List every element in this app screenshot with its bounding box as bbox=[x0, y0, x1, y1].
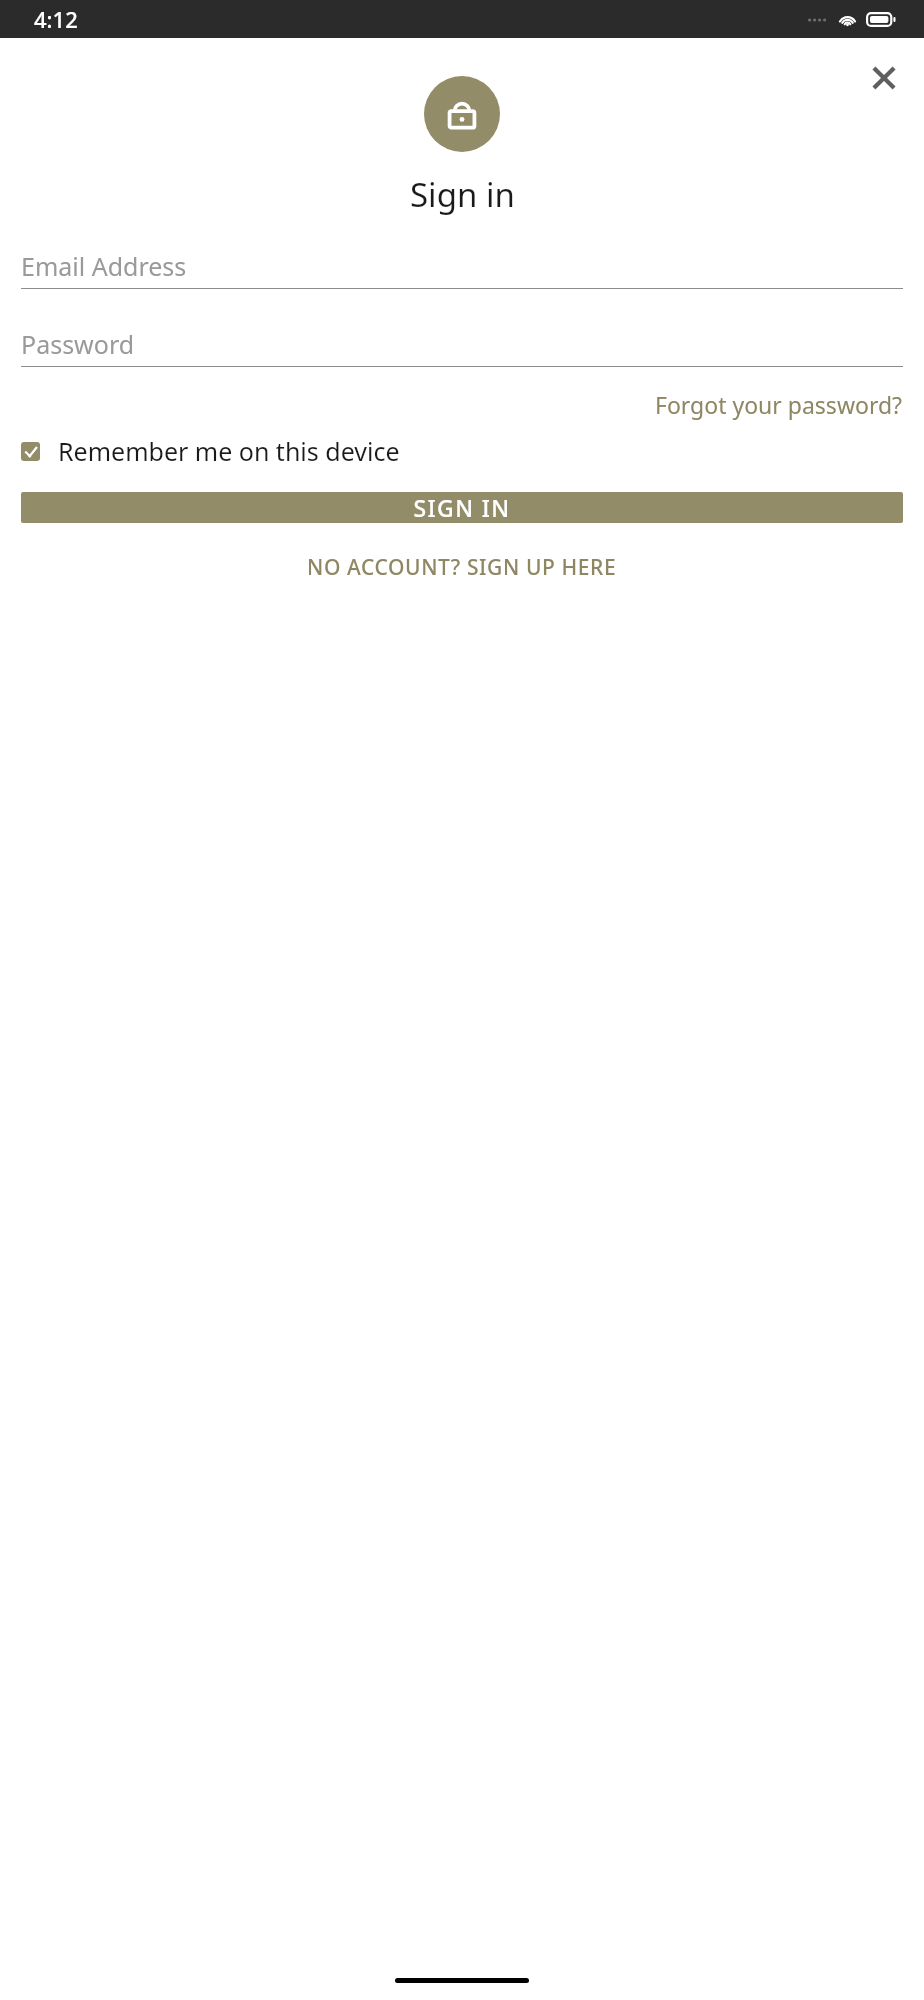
staticText: Password bbox=[21, 327, 135, 361]
button[interactable]: SIGN IN bbox=[21, 492, 903, 523]
staticText: Sign in bbox=[410, 172, 515, 217]
button[interactable]: Remember me on this device bbox=[21, 434, 903, 468]
staticText: 4:12 bbox=[34, 4, 78, 34]
staticText: Remember me on this device bbox=[58, 434, 400, 468]
button[interactable]: NO ACCOUNT? SIGN UP HERE bbox=[291, 545, 633, 590]
button[interactable]: Email Address bbox=[21, 249, 903, 289]
button[interactable]: Close bbox=[858, 52, 910, 104]
button[interactable]: Forgot your password? bbox=[655, 385, 903, 424]
staticText: Email Address bbox=[21, 249, 187, 283]
staticText: SIGN IN bbox=[413, 492, 511, 523]
button[interactable]: Password bbox=[21, 327, 903, 367]
